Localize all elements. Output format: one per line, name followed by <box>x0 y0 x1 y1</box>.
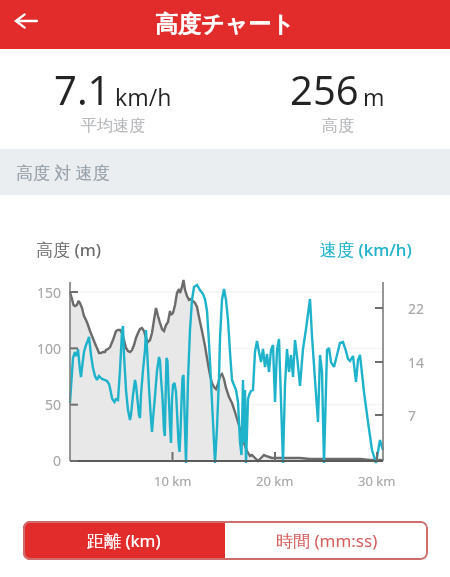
staticText: 高度 (m) <box>36 238 102 261</box>
staticText: 高度 対 速度 <box>16 161 110 184</box>
staticText: 0 <box>53 451 62 469</box>
staticText: m <box>363 81 385 112</box>
button[interactable]: 距離 (km) <box>23 521 225 560</box>
staticText: 時間 (mm:ss) <box>276 529 378 552</box>
staticText: 速度 (km/h) <box>320 238 412 261</box>
staticText: 30 km <box>358 472 396 490</box>
button[interactable]: Back <box>2 0 50 45</box>
staticText: 100 <box>37 339 62 357</box>
staticText: 20 km <box>256 472 294 490</box>
staticText: 10 km <box>154 472 192 490</box>
staticText: 22 <box>408 299 425 317</box>
staticText: 7 <box>408 406 417 424</box>
button[interactable]: 時間 (mm:ss) <box>225 521 428 560</box>
staticText: 50 <box>45 395 62 413</box>
staticText: 高度 <box>322 116 354 136</box>
staticText: km/h <box>115 81 172 112</box>
staticText: 14 <box>408 353 425 371</box>
staticText: 7.1 <box>54 62 111 116</box>
staticText: 150 <box>37 283 62 301</box>
staticText: 平均速度 <box>81 116 145 136</box>
staticText: 距離 (km) <box>87 529 161 552</box>
staticText: 高度チャート <box>155 10 295 39</box>
staticText: 256 <box>290 62 359 116</box>
